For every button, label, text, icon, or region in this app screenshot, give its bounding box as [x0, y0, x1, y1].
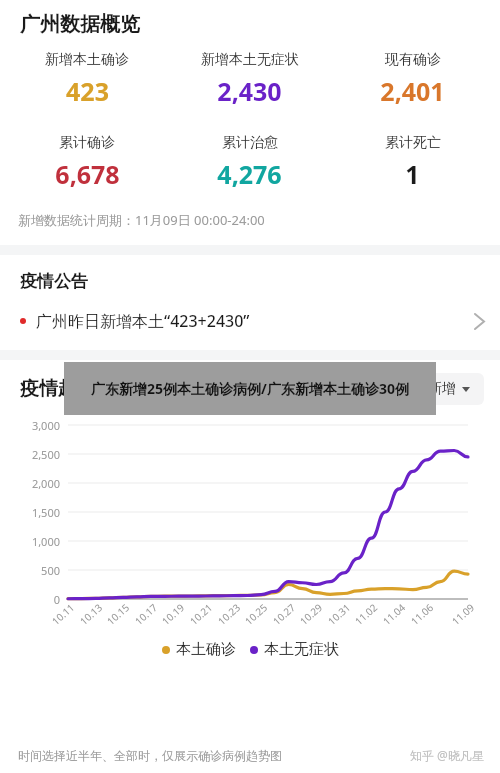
staticText: 30 天: [342, 379, 376, 398]
staticText: 新增: [428, 380, 456, 398]
staticText: 4,276: [217, 157, 282, 191]
staticText: 6,678: [55, 157, 120, 191]
staticText: 2,430: [217, 74, 282, 108]
staticText: 3,000: [0, 418, 60, 433]
staticText: 广州数据概览: [20, 12, 140, 37]
staticText: 10.31: [325, 600, 353, 628]
staticText: 10.21: [187, 600, 215, 628]
staticText: 10.13: [77, 600, 105, 628]
staticText: 10.19: [159, 600, 187, 628]
staticText: 500: [0, 563, 60, 578]
staticText: 知乎 @晓凡星: [410, 747, 484, 763]
staticText: 新增本土确诊: [45, 51, 129, 69]
staticText: 10.27: [270, 600, 298, 628]
other: More: [475, 314, 484, 329]
staticText: 累计死亡: [385, 134, 441, 152]
staticText: 11.02: [352, 600, 380, 628]
staticText: 10.11: [49, 600, 77, 628]
staticText: 1,500: [0, 505, 60, 520]
staticText: 11.06: [408, 600, 436, 628]
staticText: 疫情趋势: [20, 377, 96, 401]
staticText: 2,401: [380, 74, 445, 108]
staticText: 时间选择近半年、全部时，仅展示确诊病例趋势图: [18, 748, 282, 763]
staticText: 本土确诊: [176, 640, 236, 659]
staticText: 10.15: [104, 600, 132, 628]
staticText: 广东新增25例本土确诊病例/广东新增本土确诊30例: [91, 379, 409, 398]
staticText: 累计治愈: [222, 134, 278, 152]
staticText: 2,500: [0, 447, 60, 462]
staticText: 新增本土无症状: [201, 51, 299, 69]
staticText: 新增数据统计周期：11月09日 00:00-24:00: [18, 211, 265, 229]
staticText: 11.04: [380, 600, 408, 628]
staticText: 累计确诊: [59, 134, 115, 152]
staticText: 1: [405, 157, 420, 191]
staticText: 10.17: [132, 600, 160, 628]
staticText: 疫情公告: [20, 271, 88, 292]
staticText: 10.23: [215, 600, 243, 628]
button[interactable]: 广州昨日新增本土“423+2430”: [0, 310, 500, 332]
button[interactable]: 新增: [414, 373, 484, 405]
staticText: 10.25: [242, 600, 270, 628]
staticText: 11.09: [449, 600, 477, 628]
button[interactable]: 30 天: [328, 372, 404, 405]
staticText: 423: [66, 74, 109, 108]
staticText: 2,000: [0, 476, 60, 491]
staticText: 0: [0, 592, 60, 607]
staticText: 10.29: [297, 600, 325, 628]
staticText: 广州昨日新增本土“423+2430”: [36, 310, 467, 332]
staticText: 现有确诊: [385, 51, 441, 69]
staticText: 1,000: [0, 534, 60, 549]
staticText: 本土无症状: [264, 640, 339, 659]
